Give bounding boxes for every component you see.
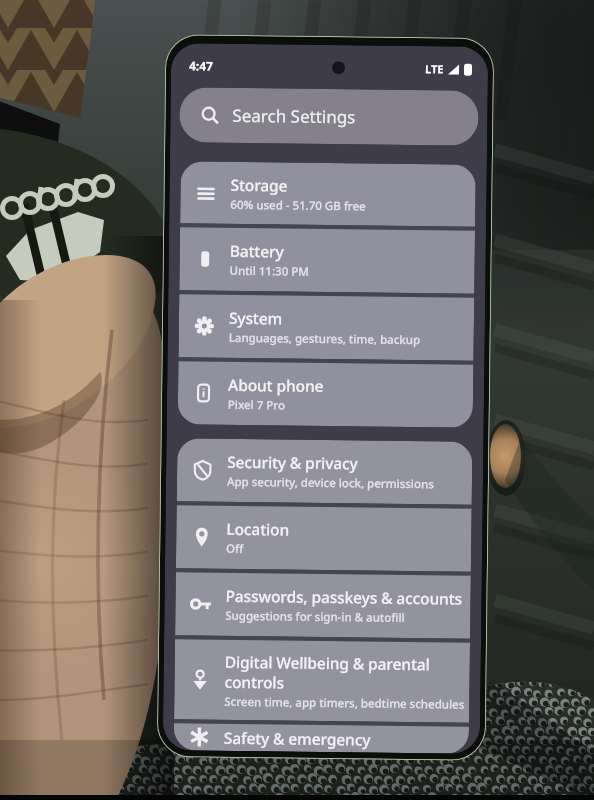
staticText: 4:47 bbox=[189, 57, 213, 74]
button[interactable]: Battery bbox=[179, 227, 475, 294]
staticText: Off bbox=[226, 541, 244, 557]
button[interactable]: Safety & emergency bbox=[174, 723, 469, 754]
staticText: LTE bbox=[425, 61, 444, 76]
staticText: Battery bbox=[230, 240, 284, 261]
button[interactable]: System bbox=[178, 294, 474, 361]
staticText: Pixel 7 Pro bbox=[228, 397, 286, 413]
staticText: Digital Wellbeing & parental controls bbox=[224, 651, 430, 694]
staticText: Security & privacy bbox=[227, 451, 358, 473]
button[interactable]: Location bbox=[176, 505, 472, 572]
staticText: Suggestions for sign-in & autofill bbox=[225, 608, 405, 626]
button[interactable]: About phone bbox=[178, 361, 473, 428]
staticText: Search Settings bbox=[232, 104, 356, 128]
button[interactable]: Storage bbox=[180, 161, 476, 227]
button[interactable]: Search Settings bbox=[179, 87, 479, 146]
staticText: Passwords, passkeys & accounts bbox=[225, 585, 463, 609]
staticText: Storage bbox=[230, 174, 288, 195]
staticText: Until 11:30 PM bbox=[229, 263, 310, 280]
staticText: Languages, gestures, time, backup bbox=[229, 330, 421, 348]
staticText: App security, device lock, permissions bbox=[227, 474, 434, 492]
staticText: 60% used - 51.70 GB free bbox=[230, 197, 366, 214]
staticText: About phone bbox=[228, 374, 324, 396]
staticText: Safety & emergency bbox=[224, 727, 371, 750]
staticText: System bbox=[229, 307, 283, 328]
button[interactable]: Security & privacy bbox=[177, 438, 472, 505]
staticText: Location bbox=[226, 518, 290, 540]
button[interactable]: Digital Wellbeing & parental controls bbox=[174, 639, 470, 723]
button[interactable]: Passwords, passkeys & accounts bbox=[175, 572, 471, 639]
staticText: Screen time, app timers, bedtime schedul… bbox=[224, 694, 465, 713]
